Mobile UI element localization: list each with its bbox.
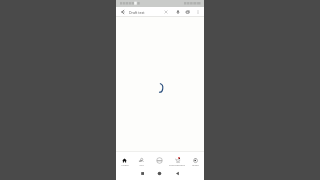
button[interactable]: More options <box>195 8 200 16</box>
button[interactable]: Browse <box>150 152 168 167</box>
button[interactable]: Subscriptions <box>168 152 186 167</box>
button[interactable]: Draft text <box>129 8 162 16</box>
button[interactable]: Recent apps <box>136 168 148 180</box>
button[interactable]: Voice search <box>175 8 180 16</box>
button[interactable]: Clear <box>163 8 168 16</box>
staticText: Draft text <box>129 10 145 15</box>
staticText: You <box>139 163 144 166</box>
staticText: Subscriptions <box>169 163 185 166</box>
button[interactable]: Back <box>172 168 184 180</box>
button[interactable]: Home <box>116 152 133 167</box>
staticText: Home <box>121 163 129 166</box>
button[interactable]: Camera search <box>185 8 190 16</box>
button[interactable]: You <box>133 152 150 167</box>
staticText: Menu <box>192 163 199 166</box>
button[interactable]: Back <box>119 8 126 15</box>
button[interactable]: Menu <box>186 152 204 167</box>
button[interactable]: Home <box>154 168 166 180</box>
